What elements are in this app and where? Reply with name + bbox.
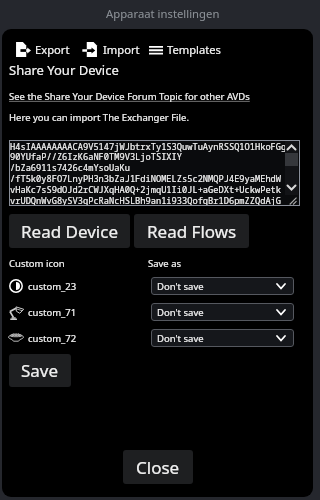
staticText: custom_71 xyxy=(28,306,77,319)
staticText: Save as xyxy=(148,257,182,270)
staticText: Here you can import The Exchanger File. xyxy=(9,111,189,124)
button[interactable]: Templates xyxy=(149,42,221,57)
staticText: H4sIAAAAAAAACA9V5147jWJbtrxTy1S3QuwTuAyn… xyxy=(10,141,287,153)
other: Import xyxy=(82,41,99,58)
staticText: Import xyxy=(103,42,140,57)
staticText: Custom icon xyxy=(9,257,65,270)
button[interactable]: Don't save xyxy=(151,329,294,347)
button[interactable]: Read Flows xyxy=(134,214,249,248)
button[interactable]: Import xyxy=(82,41,140,58)
button[interactable]: Export xyxy=(14,41,70,58)
button[interactable]: custom_23 xyxy=(8,276,77,296)
staticText: custom_23 xyxy=(28,280,77,293)
staticText: Close xyxy=(136,456,180,479)
staticText: Don't save xyxy=(157,280,204,293)
button[interactable]: Read Device xyxy=(9,214,130,248)
button[interactable]: custom_71 xyxy=(8,302,77,322)
button[interactable]: Don't save xyxy=(151,277,294,295)
other: Scroll up xyxy=(285,142,298,153)
staticText: 90YUfaP//Z6IzK6aNF0TM9V3LjoTSIXIY xyxy=(10,151,183,163)
staticText: Read Flows xyxy=(147,220,237,243)
button[interactable]: custom_72 xyxy=(8,328,77,348)
staticText: Share Your Device xyxy=(9,61,119,79)
staticText: vrUDQnWvG8ySV3qPcRaNcHSLBh9an1i933QofqBr… xyxy=(10,195,282,207)
staticText: Don't save xyxy=(157,306,204,319)
other: Export xyxy=(14,41,31,58)
staticText: custom_72 xyxy=(28,332,77,345)
staticText: Export xyxy=(35,42,70,57)
staticText: Don't save xyxy=(157,332,204,345)
staticText: Templates xyxy=(167,42,221,57)
staticText: Save xyxy=(21,359,59,382)
button[interactable]: Close xyxy=(123,450,193,484)
button[interactable]: See the Share Your Device Forum Topic fo… xyxy=(9,90,250,103)
staticText: vHaKc7sS9dOJd2rCWJXqHA0Q+2jmqU1Ii0JL+aGe… xyxy=(10,184,282,196)
staticText: /bZa6911s7426c4mYsoUaKu xyxy=(10,162,130,174)
other: Scroll down xyxy=(285,182,298,193)
staticText: Read Device xyxy=(21,220,119,243)
button[interactable]: Don't save xyxy=(151,303,294,321)
other: Templates xyxy=(149,43,163,57)
button[interactable]: Save xyxy=(9,354,71,387)
staticText: Apparaat instellingen xyxy=(106,6,220,21)
staticText: /fT5k0y8FO7LnyPH3n3bZaJ1FdiNOMELZs5c2NMQ… xyxy=(10,173,282,185)
